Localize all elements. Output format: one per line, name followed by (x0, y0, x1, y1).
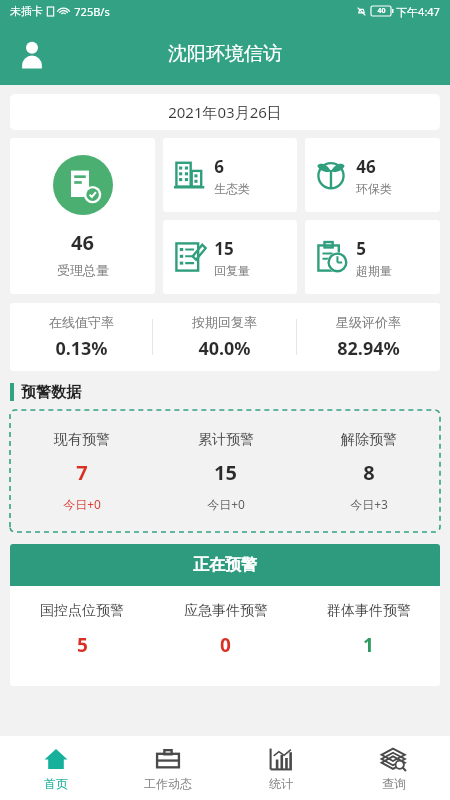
button[interactable]: 5 (305, 220, 440, 294)
staticText: 沈阳环境信访 (168, 42, 282, 66)
staticText: 2021年03月26日 (168, 102, 282, 122)
staticText: 0.13% (55, 336, 108, 361)
button[interactable]: 工作动态 (112, 736, 224, 800)
button[interactable]: Profile (8, 30, 56, 78)
staticText: 统计 (269, 776, 293, 791)
button[interactable]: 2021年03月26日 (10, 94, 440, 130)
staticText: 在线值守率 (49, 314, 114, 330)
staticText: 40 (377, 6, 386, 16)
button[interactable]: 国控点位预警 (10, 586, 154, 686)
staticText: 7 (76, 459, 88, 486)
staticText: 5 (77, 632, 88, 658)
staticText: 预警数据 (21, 383, 81, 402)
staticText: 今日+0 (63, 496, 101, 512)
staticText: 今日+0 (207, 496, 245, 512)
button[interactable]: 在线值守率 (10, 303, 152, 371)
staticText: 累计预警 (198, 431, 254, 449)
button[interactable]: 6 (163, 138, 297, 212)
button[interactable]: 统计 (224, 736, 337, 800)
staticText: 下午4:47 (396, 4, 440, 19)
staticText: 工作动态 (144, 776, 192, 791)
button[interactable]: 星级评价率 (297, 303, 440, 371)
staticText: 环保类 (356, 181, 392, 196)
staticText: 国控点位预警 (40, 602, 124, 620)
staticText: 查询 (382, 776, 406, 791)
staticText: 6 (214, 155, 224, 178)
staticText: 46 (356, 155, 376, 178)
staticText: 46 (71, 229, 94, 256)
staticText: 725B/s (74, 4, 110, 19)
staticText: 受理总量 (57, 262, 109, 278)
staticText: 5 (356, 237, 366, 260)
button[interactable]: 群体事件预警 (297, 586, 440, 686)
staticText: 回复量 (214, 263, 250, 278)
staticText: 1 (363, 632, 374, 658)
staticText: 8 (363, 459, 375, 486)
staticText: 15 (214, 459, 237, 486)
button[interactable]: 现有预警 (10, 410, 154, 532)
staticText: 今日+3 (350, 496, 388, 512)
staticText: 正在预警 (193, 555, 257, 575)
staticText: 15 (214, 237, 234, 260)
staticText: 82.94% (337, 336, 400, 361)
staticText: 按期回复率 (192, 314, 257, 330)
staticText: 解除预警 (341, 431, 397, 449)
button[interactable]: 15 (163, 220, 297, 294)
staticText: 星级评价率 (336, 314, 401, 330)
button[interactable]: 46 (10, 138, 155, 294)
button[interactable]: 应急事件预警 (154, 586, 297, 686)
staticText: 现有预警 (54, 431, 110, 449)
button[interactable]: 查询 (337, 736, 450, 800)
button[interactable]: 累计预警 (154, 410, 297, 532)
staticText: 超期量 (356, 263, 392, 278)
button[interactable]: 按期回复率 (153, 303, 296, 371)
staticText: 未插卡 (10, 4, 43, 18)
staticText: 0 (220, 632, 231, 658)
staticText: 首页 (44, 776, 68, 791)
staticText: 40.0% (198, 336, 251, 361)
button[interactable]: 首页 (0, 736, 112, 800)
button[interactable]: 解除预警 (297, 410, 440, 532)
button[interactable]: 46 (305, 138, 440, 212)
staticText: 群体事件预警 (327, 602, 411, 620)
staticText: 生态类 (214, 181, 250, 196)
staticText: 应急事件预警 (184, 602, 268, 620)
